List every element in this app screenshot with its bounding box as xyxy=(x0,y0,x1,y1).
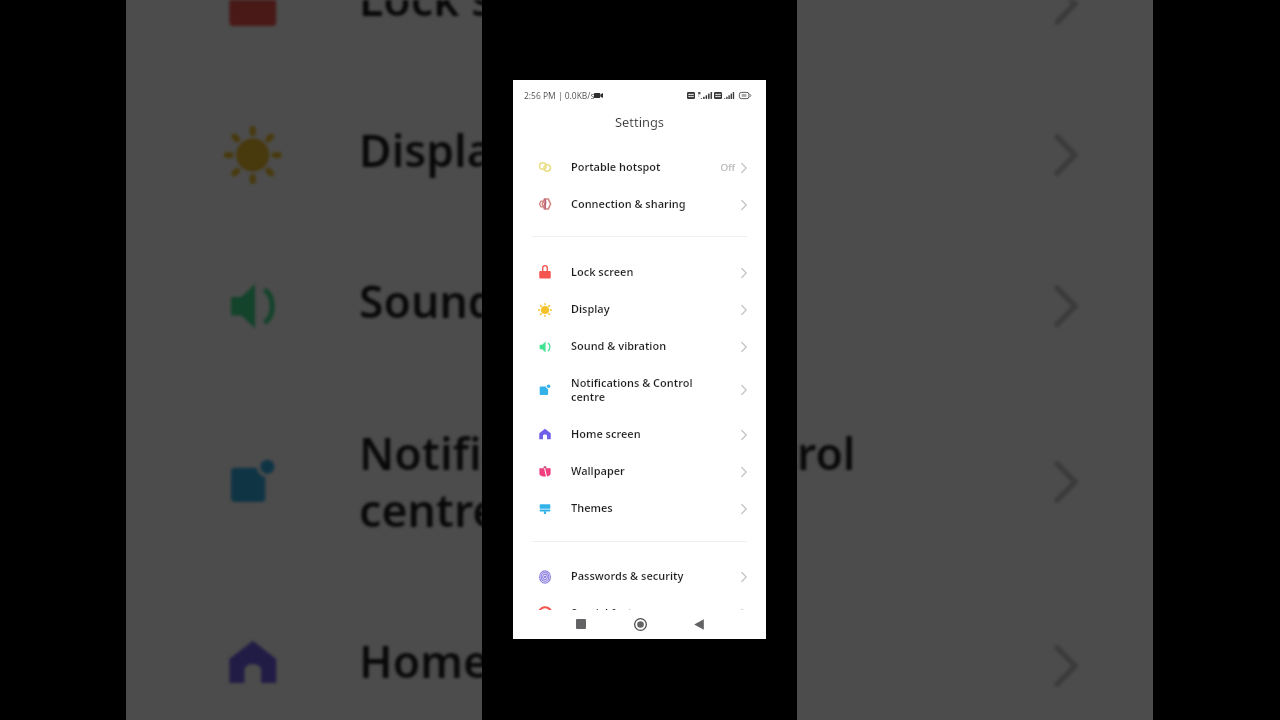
button[interactable] xyxy=(126,77,1153,229)
button[interactable] xyxy=(513,453,766,490)
staticText: Home screen xyxy=(571,426,721,441)
button[interactable] xyxy=(513,558,766,595)
staticText: Notifications & Control centre xyxy=(359,421,972,539)
button[interactable]: Recent apps xyxy=(567,610,595,638)
staticText: 2:56 PM | 0.0KB/s xyxy=(524,90,595,102)
staticText: Portable hotspot xyxy=(571,159,721,174)
button[interactable] xyxy=(513,254,766,291)
staticText: Lock screen xyxy=(359,0,972,28)
button[interactable] xyxy=(513,291,766,328)
staticText: Settings xyxy=(513,113,766,131)
staticText: Off xyxy=(695,161,735,174)
staticText: Connection & sharing xyxy=(571,196,721,211)
button[interactable] xyxy=(513,186,766,223)
staticText: Passwords & security xyxy=(571,568,721,583)
staticText: Display xyxy=(359,118,972,179)
button[interactable]: Back xyxy=(685,610,713,638)
button[interactable] xyxy=(513,416,766,453)
button[interactable] xyxy=(126,229,1153,380)
staticText: Wallpaper xyxy=(571,463,721,478)
button[interactable] xyxy=(126,404,1153,555)
button[interactable] xyxy=(513,490,766,527)
button[interactable] xyxy=(513,328,766,365)
staticText: Notifications & Control centre xyxy=(571,375,721,404)
button[interactable] xyxy=(513,595,766,632)
button[interactable] xyxy=(513,149,766,186)
button[interactable]: Home xyxy=(626,610,654,638)
staticText: Lock screen xyxy=(571,264,721,279)
button[interactable] xyxy=(513,371,766,408)
staticText: Special features xyxy=(571,605,721,620)
staticText: Display xyxy=(571,301,721,316)
staticText: Themes xyxy=(571,500,721,515)
staticText: Sound & vibration xyxy=(571,338,721,353)
button[interactable] xyxy=(126,0,1153,77)
button[interactable] xyxy=(126,588,1153,720)
staticText: Sound & vibration xyxy=(359,269,972,331)
staticText: Home screen xyxy=(359,629,972,690)
